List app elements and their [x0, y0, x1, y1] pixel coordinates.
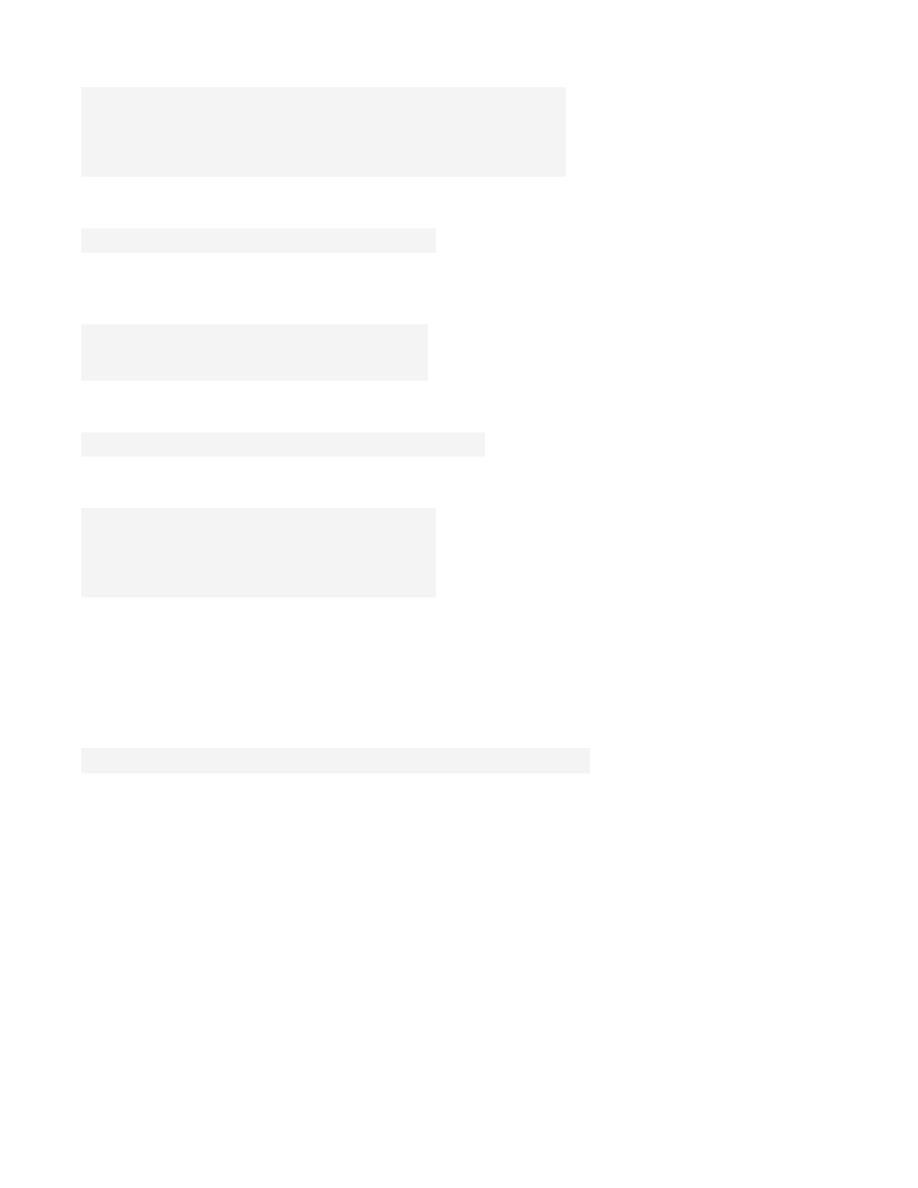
other: Loading content: [0, 0, 918, 1188]
